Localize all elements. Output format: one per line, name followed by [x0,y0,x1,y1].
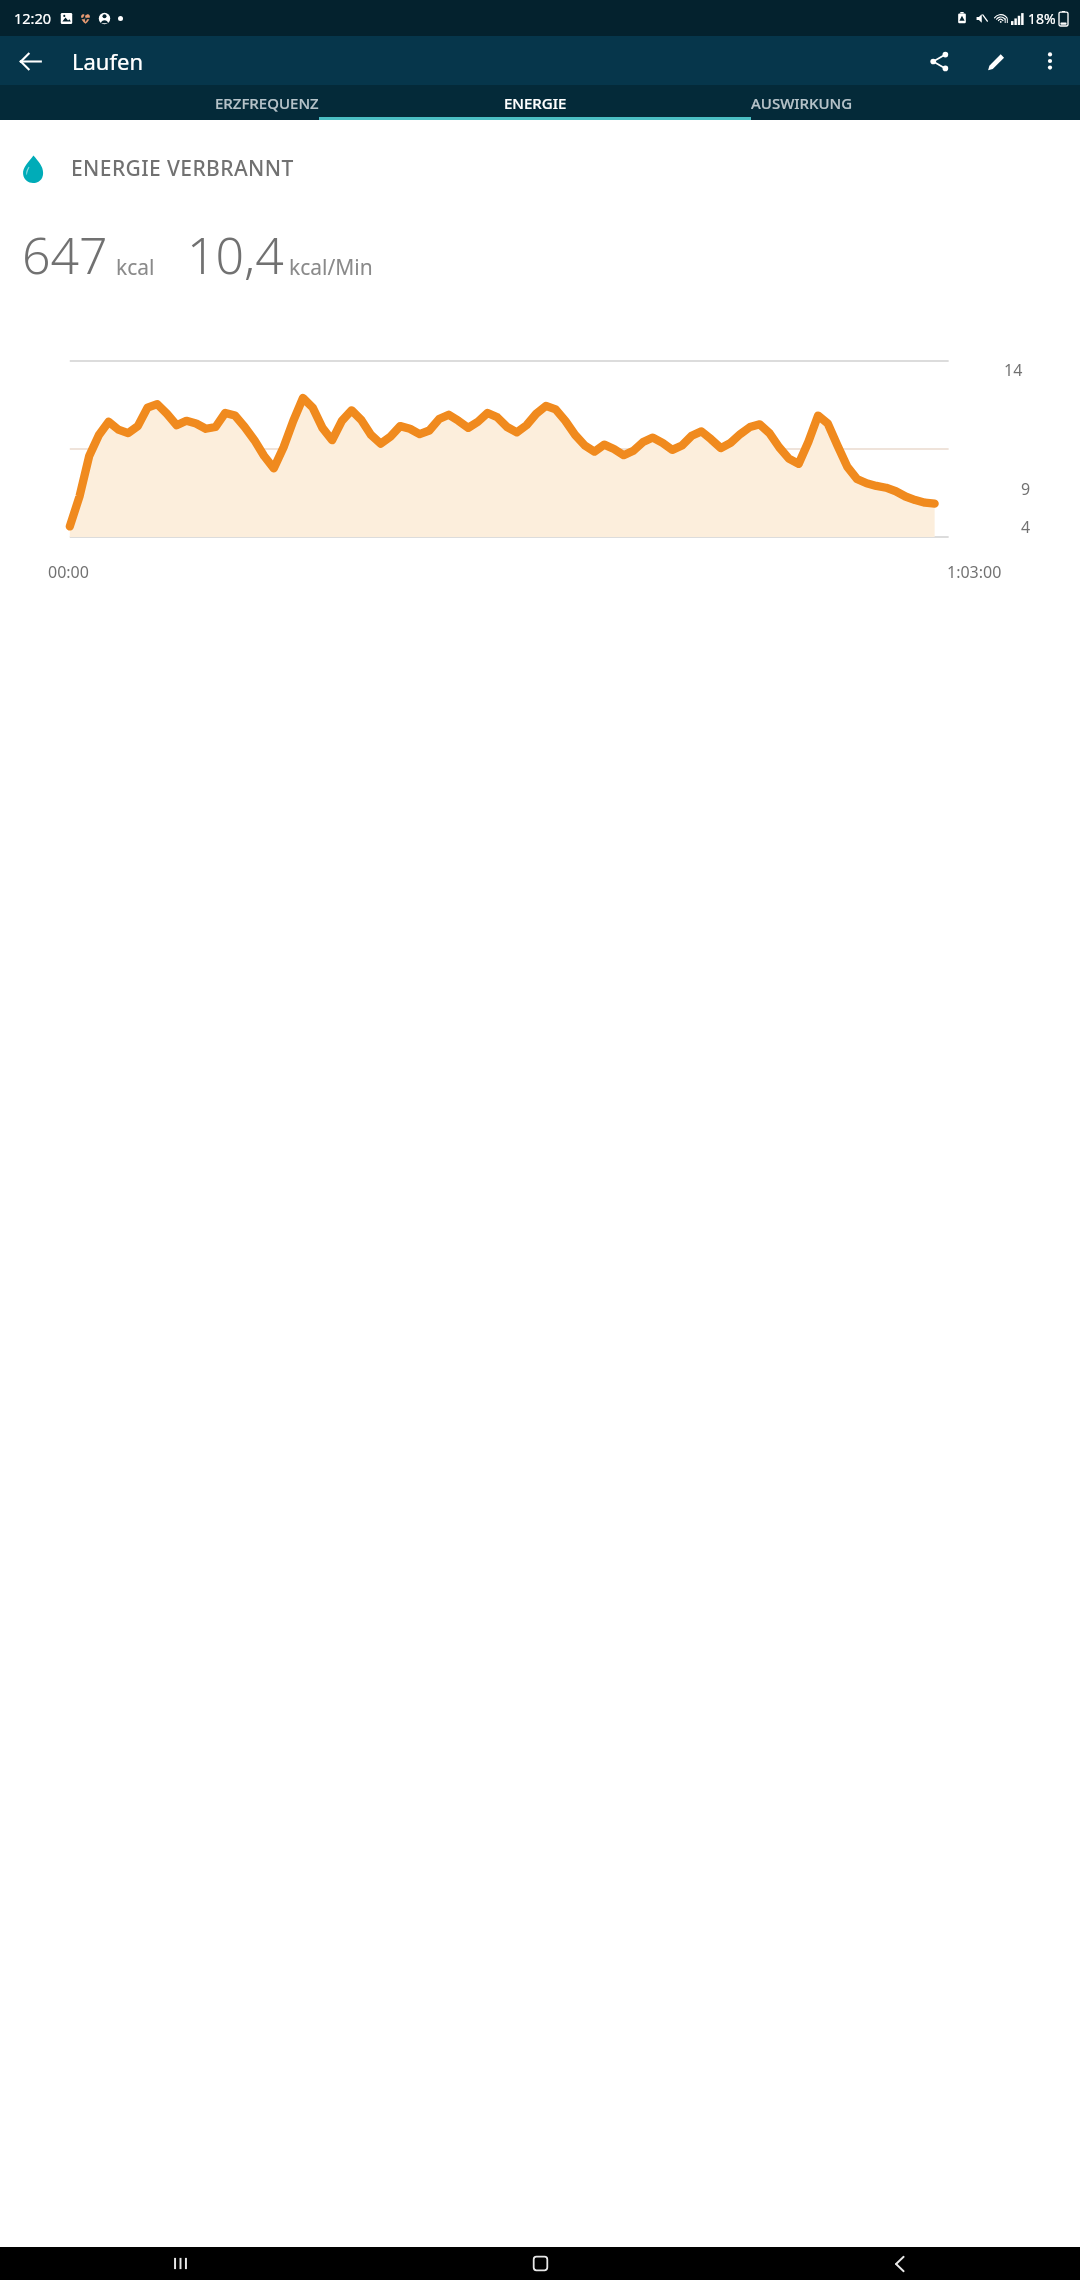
staticText: 1:03:00 [947,561,1002,583]
button[interactable]: Edit [972,37,1020,85]
staticText: 18% [1028,9,1056,28]
button[interactable]: ERZFREQUENZ [0,85,319,120]
staticText: kcal [116,253,155,282]
button[interactable]: ENERGIE [319,85,751,120]
staticText: 10,4 [187,221,284,289]
staticText: 647 [22,221,108,289]
staticText: 9 [1021,478,1031,500]
button[interactable]: Back [6,37,54,85]
staticText: 14 [1004,359,1023,381]
staticText: AUSWIRKUNG [751,93,853,113]
staticText: 00:00 [48,561,89,583]
button[interactable]: AUSWIRKUNG [751,85,1080,120]
staticText: ERZFREQUENZ [215,93,319,113]
button[interactable]: More options [1026,37,1074,85]
button[interactable]: Home [360,2247,720,2280]
button[interactable]: Share [915,37,963,85]
staticText: ENERGIE VERBRANNT [71,154,294,183]
staticText: ENERGIE [504,93,567,113]
button[interactable]: Recent apps [0,2247,360,2280]
staticText: 12:20 [14,8,52,28]
staticText: kcal/Min [289,253,373,282]
staticText: Laufen [72,46,144,76]
button[interactable]: Back [720,2247,1080,2280]
staticText: 4 [1021,516,1031,538]
